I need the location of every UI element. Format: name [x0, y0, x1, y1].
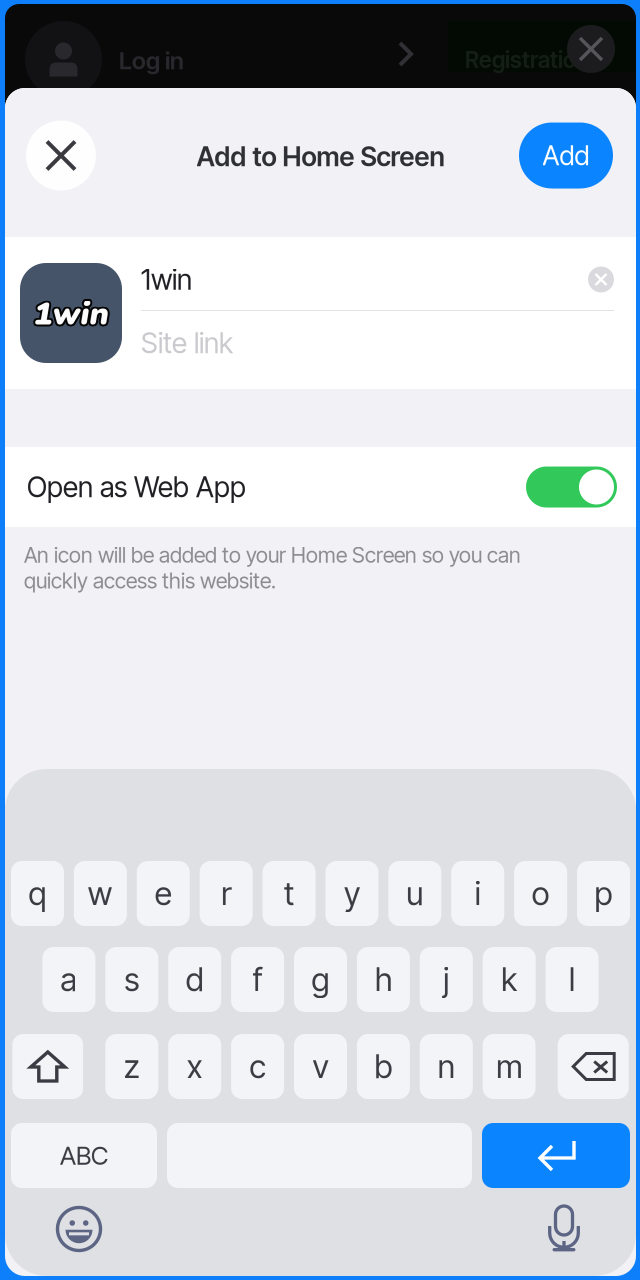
button[interactable]: Close banner: [567, 25, 615, 73]
button[interactable]: y: [325, 861, 378, 926]
staticText: o: [532, 874, 550, 913]
button[interactable]: Backspace: [558, 1034, 629, 1099]
button[interactable]: g: [294, 947, 347, 1012]
button[interactable]: m: [483, 1034, 536, 1099]
staticText: ABC: [60, 1140, 108, 1171]
button[interactable]: x: [168, 1034, 221, 1099]
staticText: n: [438, 1047, 455, 1086]
staticText: 1win: [32, 292, 107, 336]
button[interactable]: k: [483, 947, 536, 1012]
button[interactable]: h: [357, 947, 410, 1012]
button[interactable]: Voice input: [534, 1199, 594, 1259]
button[interactable]: p: [577, 861, 630, 926]
staticText: Site link: [141, 326, 233, 360]
button[interactable]: c: [231, 1034, 284, 1099]
staticText: j: [443, 960, 449, 999]
staticText: 1win: [35, 294, 110, 337]
staticText: x: [187, 1047, 203, 1086]
staticText: l: [569, 960, 575, 999]
button[interactable]: a: [42, 947, 95, 1012]
staticText: q: [28, 874, 46, 913]
button[interactable]: Add: [519, 122, 613, 188]
staticText: 1win: [32, 294, 107, 337]
staticText: s: [124, 960, 139, 999]
button[interactable]: z: [105, 1034, 158, 1099]
staticText: Log in: [119, 46, 184, 75]
staticText: An icon will be added to your Home Scree…: [24, 542, 521, 594]
staticText: y: [344, 874, 360, 913]
staticText: Registration: [465, 46, 589, 73]
button[interactable]: f: [231, 947, 284, 1012]
button[interactable]: n: [420, 1034, 473, 1099]
staticText: e: [155, 874, 172, 913]
staticText: z: [124, 1047, 140, 1086]
button[interactable]: r: [200, 861, 253, 926]
button[interactable]: ABC: [11, 1123, 157, 1188]
staticText: d: [186, 960, 204, 999]
staticText: 1win: [35, 291, 110, 334]
button[interactable]: e: [137, 861, 190, 926]
staticText: w: [88, 874, 113, 913]
button[interactable]: Clear text: [588, 266, 614, 292]
staticText: h: [375, 960, 392, 999]
button[interactable]: b: [357, 1034, 410, 1099]
staticText: i: [475, 874, 481, 913]
staticText: 1win: [33, 292, 108, 336]
button[interactable]: o: [514, 861, 567, 926]
button[interactable]: Close: [26, 120, 96, 190]
staticText: 1win: [141, 263, 192, 296]
staticText: Open as Web App: [27, 470, 246, 504]
staticText: t: [284, 874, 294, 913]
staticText: Add: [542, 139, 589, 172]
button[interactable]: q: [11, 861, 64, 926]
button[interactable]: v: [294, 1034, 347, 1099]
staticText: v: [312, 1047, 328, 1086]
button[interactable]: w: [74, 861, 127, 926]
staticText: r: [221, 874, 231, 913]
staticText: k: [501, 960, 517, 999]
button[interactable]: t: [262, 861, 315, 926]
staticText: b: [374, 1047, 392, 1086]
button[interactable]: u: [388, 861, 441, 926]
button[interactable]: Open as Web App: [5, 447, 636, 527]
staticText: a: [60, 960, 77, 999]
button[interactable]: Return: [482, 1123, 630, 1188]
staticText: 1win: [33, 294, 108, 338]
button[interactable]: Shift: [12, 1034, 83, 1099]
staticText: Add to Home Screen: [196, 140, 444, 173]
button[interactable]: Emoji: [49, 1199, 109, 1259]
staticText: m: [496, 1047, 522, 1086]
staticText: c: [250, 1047, 266, 1086]
staticText: g: [311, 960, 329, 999]
staticText: p: [594, 874, 612, 913]
button[interactable]: d: [168, 947, 221, 1012]
staticText: 1win: [33, 290, 108, 334]
staticText: 1win: [32, 291, 107, 334]
button[interactable]: j: [420, 947, 473, 1012]
staticText: f: [253, 960, 263, 999]
button[interactable]: i: [451, 861, 504, 926]
staticText: u: [406, 874, 423, 913]
button[interactable]: s: [105, 947, 158, 1012]
button[interactable]: l: [546, 947, 599, 1012]
staticText: 1win: [35, 292, 110, 336]
